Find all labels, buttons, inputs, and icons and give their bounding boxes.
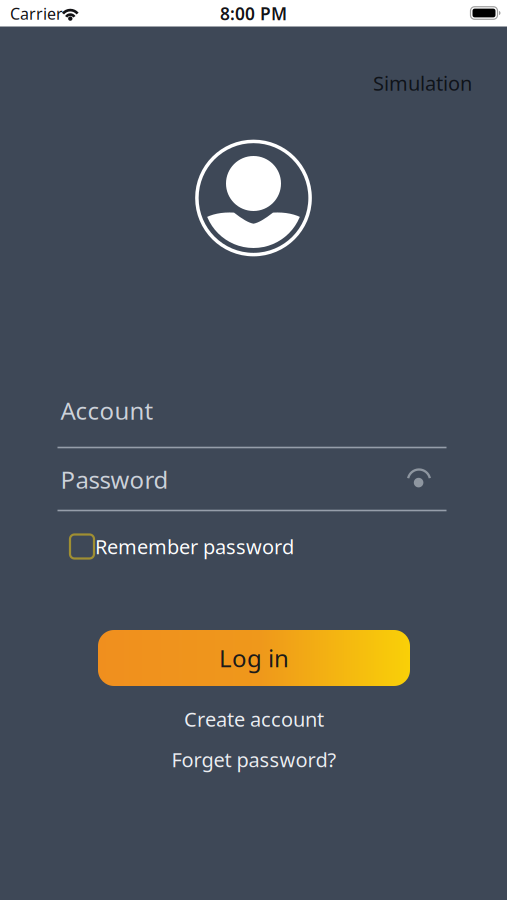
staticText: Log in: [219, 642, 289, 674]
staticText: 8:00 PM: [220, 2, 287, 25]
button[interactable]: Show password: [403, 464, 435, 494]
staticText: Remember password: [95, 533, 294, 560]
staticText: Forget password?: [171, 746, 336, 773]
button[interactable]: Create account: [184, 706, 324, 732]
staticText: Simulation: [373, 70, 472, 96]
button[interactable]: Simulation: [272, 70, 472, 96]
staticText: Carrier: [10, 3, 63, 24]
staticText: Create account: [184, 706, 324, 732]
button[interactable]: Log in: [98, 630, 410, 686]
button[interactable]: Remember password: [70, 533, 484, 560]
staticText: Password: [60, 464, 168, 495]
button[interactable]: Forget password?: [171, 746, 336, 773]
staticText: Account: [60, 395, 153, 426]
